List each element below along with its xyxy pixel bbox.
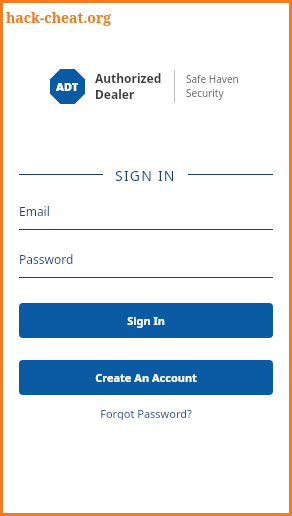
staticText: Create An Account bbox=[95, 370, 197, 385]
staticText: Password bbox=[19, 251, 74, 267]
staticText: SIGN IN bbox=[115, 166, 176, 182]
staticText: Dealer bbox=[95, 86, 135, 102]
staticText: Authorized bbox=[95, 70, 162, 86]
staticText: Sign In bbox=[127, 313, 165, 328]
button[interactable]: Forgot Password? bbox=[94, 404, 198, 422]
button[interactable]: Email bbox=[19, 203, 273, 230]
staticText: Email bbox=[19, 203, 50, 219]
button[interactable]: Sign In bbox=[19, 303, 273, 338]
staticText: Safe Haven bbox=[186, 72, 239, 86]
staticText: hack-cheat.org bbox=[6, 8, 112, 27]
staticText: ADT bbox=[56, 79, 79, 94]
button[interactable]: Password bbox=[19, 251, 273, 278]
button[interactable]: Create An Account bbox=[19, 360, 273, 395]
staticText: Security bbox=[186, 86, 224, 100]
